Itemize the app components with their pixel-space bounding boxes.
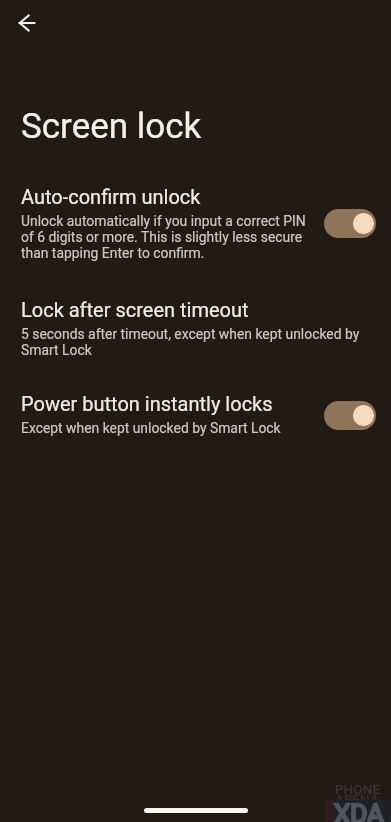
staticText: Power button instantly locks [21,392,273,415]
button[interactable]: Back [10,7,44,39]
staticText: Screen lock [21,106,202,147]
button[interactable]: Toggle [324,209,376,238]
staticText: XDA [334,799,385,822]
staticText: Lock after screen timeout [21,298,249,321]
staticText: Auto-confirm unlock [21,185,201,208]
button[interactable]: Toggle [324,401,376,430]
staticText: Except when kept unlocked by Smart Lock [21,420,281,436]
button[interactable]: Power button instantly locks [0,392,391,436]
staticText: Unlock automatically if you input a corr… [21,213,319,261]
staticText: ARENA [335,791,379,807]
button[interactable]: Auto-confirm unlock [0,185,391,261]
staticText: PHONE [335,781,381,797]
button[interactable]: Lock after screen timeout [0,298,391,358]
staticText: 5 seconds after timeout, except when kep… [21,326,366,358]
